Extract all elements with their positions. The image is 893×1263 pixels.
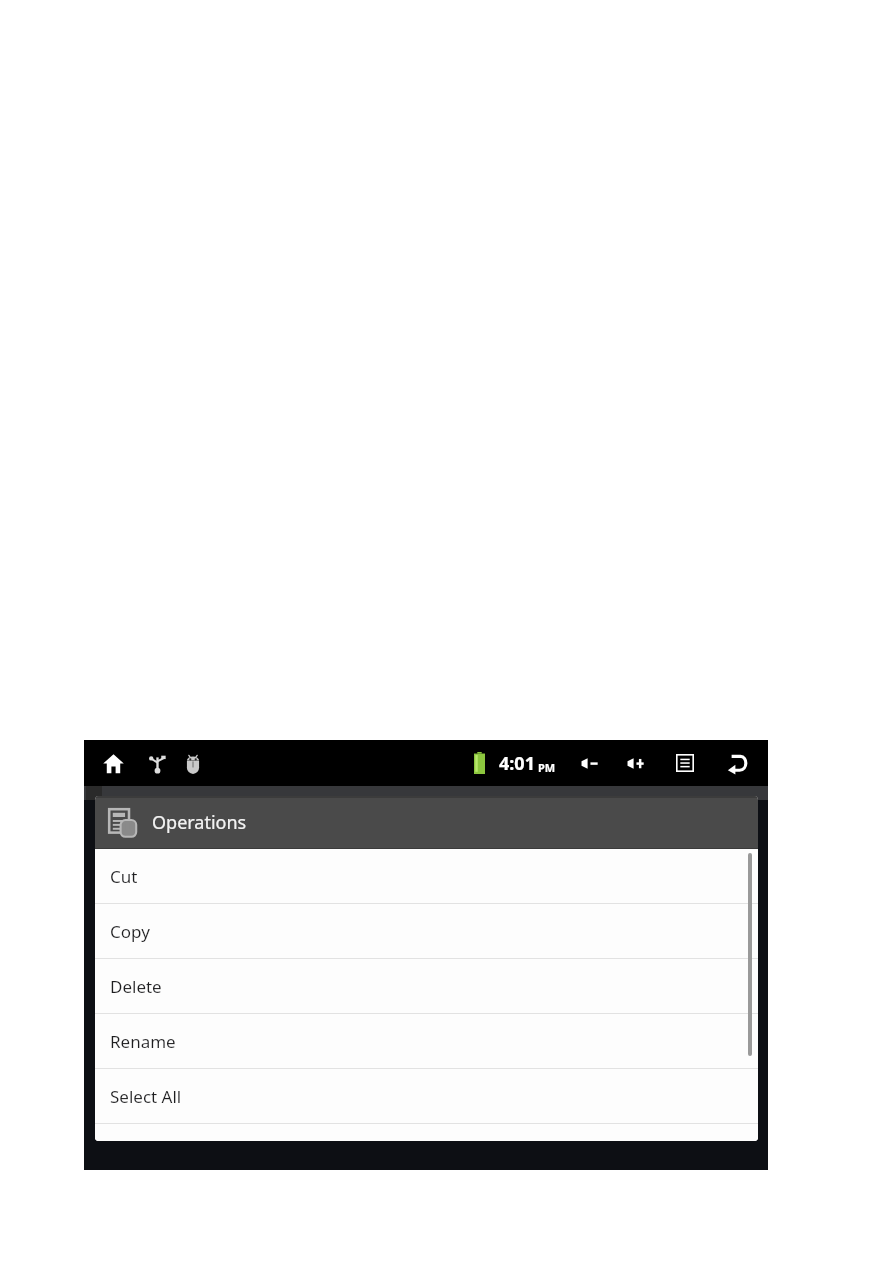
staticText: Delete [110,975,162,998]
staticText: 4:01 [499,751,535,776]
staticText: Select All [110,1085,182,1108]
other: USB connected [144,750,170,776]
button[interactable]: Copy [95,904,758,958]
other: Android debugging [180,750,206,776]
button[interactable] [95,1124,758,1141]
button[interactable]: Back [722,748,752,778]
button[interactable]: Select All [95,1069,758,1123]
staticText: Cut [110,865,138,888]
button[interactable]: Delete [95,959,758,1013]
staticText: Operations [152,810,247,835]
staticText: Rename [110,1030,176,1053]
staticText: Copy [110,920,150,943]
button[interactable]: Rename [95,1014,758,1068]
other: Battery [467,751,491,775]
button[interactable]: Home [98,748,128,778]
button[interactable]: Volume up [620,748,650,778]
button[interactable]: Menu [670,748,700,778]
button[interactable]: Cut [95,849,758,903]
button[interactable]: Volume down [574,748,604,778]
staticText: PM [538,760,556,775]
